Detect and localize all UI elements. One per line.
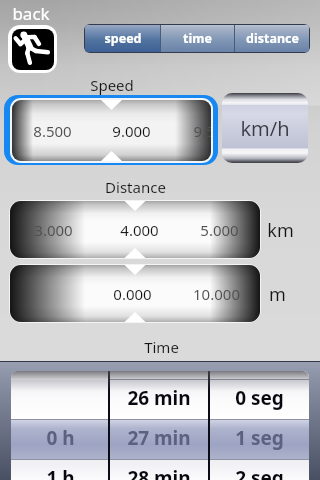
button[interactable]: km/h xyxy=(222,93,308,163)
button[interactable]: 0.000 xyxy=(9,264,261,323)
button[interactable]: 8.500 xyxy=(4,95,218,165)
staticText: 10.000 xyxy=(193,284,240,304)
staticText: km xyxy=(267,218,294,243)
staticText: 28 min xyxy=(127,465,191,480)
staticText: 8.500 xyxy=(33,121,72,141)
staticText: 9.5 xyxy=(193,121,211,141)
button[interactable]: distance xyxy=(235,25,309,52)
staticText: Distance xyxy=(105,177,166,197)
staticText: 2 seg xyxy=(235,465,284,480)
staticText: 9.000 xyxy=(112,121,151,141)
staticText: speed xyxy=(104,30,142,47)
staticText: km/h xyxy=(240,115,290,142)
staticText: 26 min xyxy=(127,385,191,411)
staticText: 0.000 xyxy=(113,284,152,304)
staticText: 1 h xyxy=(46,465,75,480)
button[interactable]: 0 h xyxy=(11,371,309,480)
button[interactable]: 3.000 xyxy=(9,200,261,259)
staticText: 1 seg xyxy=(235,425,284,451)
staticText: 0 seg xyxy=(235,385,284,411)
staticText: 0 h xyxy=(46,425,75,451)
staticText: Speed xyxy=(90,75,134,95)
staticText: 4.000 xyxy=(120,220,159,240)
staticText: distance xyxy=(246,30,299,47)
staticText: time xyxy=(183,30,212,47)
staticText: 3.000 xyxy=(34,220,73,240)
staticText: Time xyxy=(144,337,179,357)
staticText: 5.000 xyxy=(200,220,239,240)
staticText: back xyxy=(12,2,50,25)
button[interactable]: Back xyxy=(8,25,57,73)
staticText: m xyxy=(269,282,286,307)
button[interactable]: time xyxy=(161,25,234,52)
staticText: 27 min xyxy=(127,425,191,451)
button[interactable]: speed xyxy=(85,25,160,52)
